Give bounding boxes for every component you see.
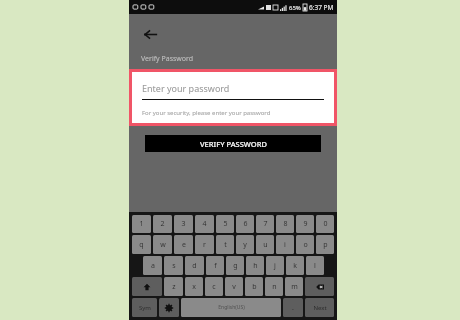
button[interactable]: f bbox=[206, 256, 224, 275]
button[interactable]: Backspace bbox=[305, 277, 334, 296]
staticText: d bbox=[192, 261, 197, 271]
button[interactable]: 7 bbox=[256, 215, 274, 233]
staticText: c bbox=[212, 282, 216, 292]
button[interactable]: VERIFY PASSWORD bbox=[145, 135, 321, 152]
button[interactable]: 1 bbox=[132, 215, 151, 233]
staticText: 1 bbox=[139, 219, 144, 229]
button[interactable]: 6 bbox=[236, 215, 254, 233]
button[interactable]: 4 bbox=[195, 215, 214, 233]
staticText: Sym bbox=[139, 304, 151, 312]
button[interactable]: c bbox=[205, 277, 223, 296]
staticText: n bbox=[272, 282, 277, 292]
button[interactable]: k bbox=[286, 256, 304, 275]
staticText: g bbox=[233, 261, 238, 271]
staticText: 7 bbox=[263, 219, 268, 229]
button[interactable]: g bbox=[226, 256, 244, 275]
staticText: b bbox=[252, 282, 257, 292]
staticText: For your security, please enter your pas… bbox=[142, 109, 271, 117]
staticText: u bbox=[263, 240, 268, 250]
staticText: 9 bbox=[303, 219, 308, 229]
staticText: y bbox=[243, 240, 247, 250]
button[interactable]: Enter your password bbox=[132, 72, 334, 123]
staticText: Verify Password bbox=[141, 54, 194, 64]
staticText: . bbox=[292, 303, 294, 313]
staticText: s bbox=[172, 261, 176, 271]
staticText: 2 bbox=[160, 219, 165, 229]
button[interactable]: u bbox=[256, 235, 274, 254]
staticText: p bbox=[323, 240, 328, 250]
button[interactable]: v bbox=[225, 277, 243, 296]
button[interactable]: 3 bbox=[174, 215, 193, 233]
staticText: q bbox=[139, 240, 144, 250]
button[interactable]: p bbox=[316, 235, 334, 254]
button[interactable]: m bbox=[285, 277, 303, 296]
staticText: h bbox=[253, 261, 258, 271]
staticText: m bbox=[291, 282, 298, 292]
button[interactable]: 9 bbox=[296, 215, 314, 233]
staticText: English(US) bbox=[218, 304, 245, 311]
button[interactable]: x bbox=[185, 277, 203, 296]
staticText: 5 bbox=[223, 219, 228, 229]
staticText: i bbox=[284, 240, 286, 250]
button[interactable]: l bbox=[306, 256, 324, 275]
staticText: t bbox=[224, 240, 227, 250]
button[interactable]: j bbox=[266, 256, 284, 275]
staticText: w bbox=[160, 240, 166, 250]
staticText: x bbox=[192, 282, 196, 292]
staticText: 4 bbox=[202, 219, 207, 229]
button[interactable]: b bbox=[245, 277, 263, 296]
button[interactable]: Back bbox=[138, 22, 162, 46]
button[interactable]: d bbox=[185, 256, 204, 275]
staticText: 8 bbox=[283, 219, 288, 229]
button[interactable]: q bbox=[132, 235, 151, 254]
button[interactable]: 8 bbox=[276, 215, 294, 233]
button[interactable]: n bbox=[265, 277, 283, 296]
button[interactable]: Next bbox=[305, 298, 334, 317]
staticText: e bbox=[182, 240, 186, 250]
staticText: o bbox=[303, 240, 308, 250]
staticText: 3 bbox=[181, 219, 186, 229]
button[interactable]: s bbox=[164, 256, 183, 275]
button[interactable]: 0 bbox=[316, 215, 334, 233]
button[interactable]: w bbox=[153, 235, 172, 254]
staticText: r bbox=[203, 240, 206, 250]
staticText: 0 bbox=[323, 219, 328, 229]
button[interactable]: e bbox=[174, 235, 193, 254]
staticText: l bbox=[314, 261, 316, 271]
staticText: j bbox=[274, 261, 276, 271]
staticText: Enter your password bbox=[142, 82, 230, 94]
button[interactable]: a bbox=[143, 256, 162, 275]
button[interactable]: y bbox=[236, 235, 254, 254]
button[interactable]: Emoji bbox=[159, 298, 179, 317]
button[interactable]: o bbox=[296, 235, 314, 254]
button[interactable]: i bbox=[276, 235, 294, 254]
button[interactable]: 2 bbox=[153, 215, 172, 233]
button[interactable]: r bbox=[195, 235, 214, 254]
staticText: 65% bbox=[289, 4, 301, 12]
button[interactable]: z bbox=[164, 277, 183, 296]
button[interactable]: 5 bbox=[216, 215, 234, 233]
staticText: 6 bbox=[243, 219, 248, 229]
button[interactable]: Shift bbox=[132, 277, 162, 296]
staticText: k bbox=[293, 261, 297, 271]
staticText: v bbox=[232, 282, 236, 292]
button[interactable]: t bbox=[216, 235, 234, 254]
button[interactable]: Sym bbox=[132, 298, 157, 317]
button[interactable]: h bbox=[246, 256, 264, 275]
staticText: z bbox=[172, 282, 176, 292]
staticText: 6:37 PM bbox=[309, 3, 334, 12]
staticText: f bbox=[214, 261, 217, 271]
button[interactable]: . bbox=[283, 298, 303, 317]
staticText: VERIFY PASSWORD bbox=[200, 139, 267, 149]
button[interactable]: English(US) bbox=[181, 298, 281, 317]
staticText: a bbox=[151, 261, 155, 271]
staticText: Next bbox=[313, 304, 327, 312]
